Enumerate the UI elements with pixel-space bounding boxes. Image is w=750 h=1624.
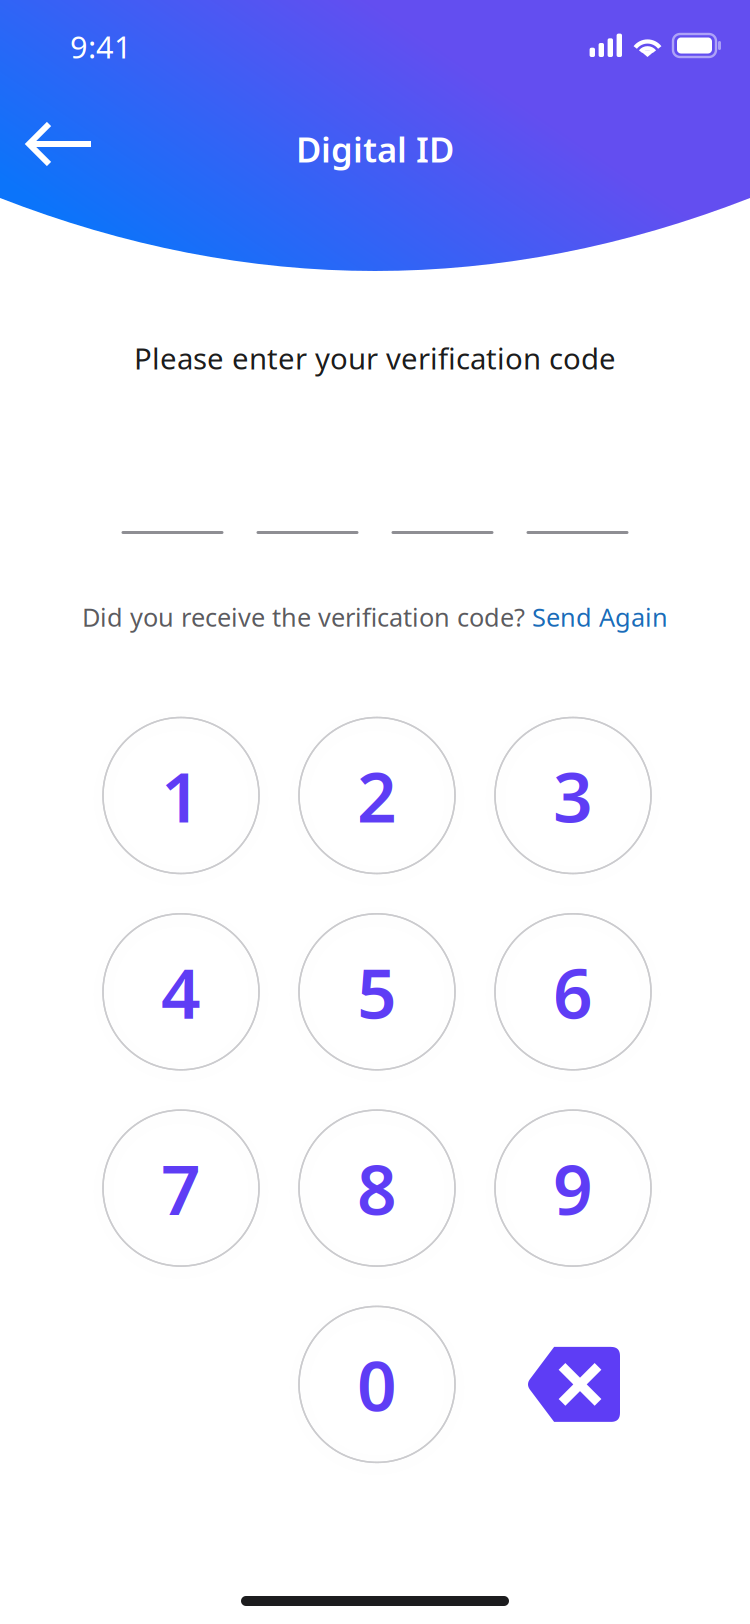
button[interactable]: Send Again <box>525 600 668 634</box>
button[interactable]: 2 <box>299 717 455 873</box>
button[interactable]: 8 <box>299 1110 455 1266</box>
staticText: 5 <box>357 946 397 1038</box>
button[interactable]: 9 <box>495 1110 651 1266</box>
button[interactable]: Back <box>5 98 115 190</box>
button[interactable]: 7 <box>103 1110 259 1266</box>
staticText: 1 <box>161 749 201 842</box>
staticText: 0 <box>357 1338 397 1430</box>
staticText: Digital ID <box>296 126 454 172</box>
staticText: 9:41 <box>70 26 132 67</box>
button[interactable]: 6 <box>495 914 651 1070</box>
button[interactable]: 3 <box>495 717 651 873</box>
staticText: Did you receive the verification code? <box>82 600 525 634</box>
staticText: 4 <box>161 946 201 1038</box>
staticText: 6 <box>553 946 593 1038</box>
button[interactable]: 4 <box>103 914 259 1070</box>
staticText: 7 <box>161 1142 201 1234</box>
button[interactable]: 5 <box>299 914 455 1070</box>
staticText: Send Again <box>525 600 668 634</box>
staticText: Please enter your verification code <box>134 338 616 377</box>
staticText: 8 <box>357 1142 397 1234</box>
staticText: 2 <box>357 749 397 842</box>
staticText: 3 <box>553 749 593 842</box>
button[interactable]: 1 <box>103 717 259 873</box>
button[interactable]: Delete <box>495 1306 651 1462</box>
staticText: 9 <box>553 1142 593 1234</box>
button[interactable]: 0 <box>299 1306 455 1462</box>
